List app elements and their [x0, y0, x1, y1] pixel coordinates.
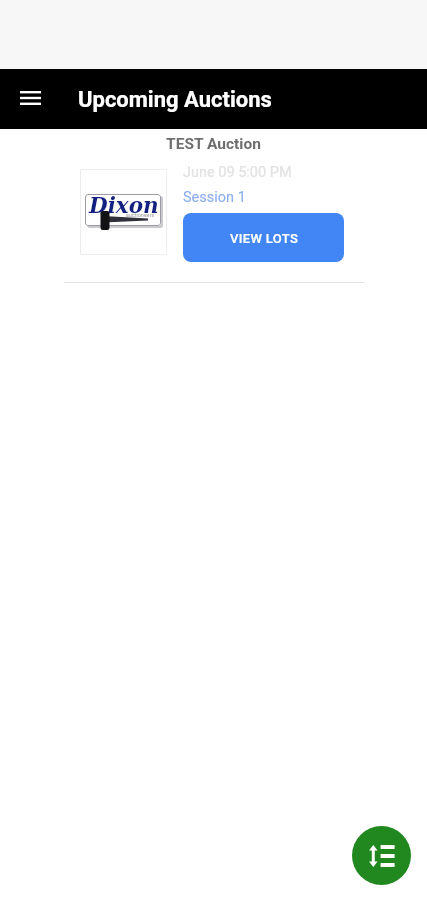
staticText: VIEW LOTS — [230, 231, 299, 246]
staticText: June 09 5:00 PM — [183, 164, 292, 181]
staticText: TEST Auction — [0, 135, 427, 153]
button[interactable]: VIEW LOTS — [183, 213, 344, 262]
staticText: Upcoming Auctions — [78, 87, 272, 113]
staticText: Dixon — [89, 193, 159, 218]
button[interactable]: TEST Auction thumbnail — [80, 169, 167, 255]
button[interactable]: Open navigation menu — [10, 79, 50, 119]
staticText: auctioneers — [126, 212, 155, 218]
button[interactable]: Sort auctions — [352, 826, 411, 885]
button[interactable]: Session 1 — [183, 189, 246, 206]
